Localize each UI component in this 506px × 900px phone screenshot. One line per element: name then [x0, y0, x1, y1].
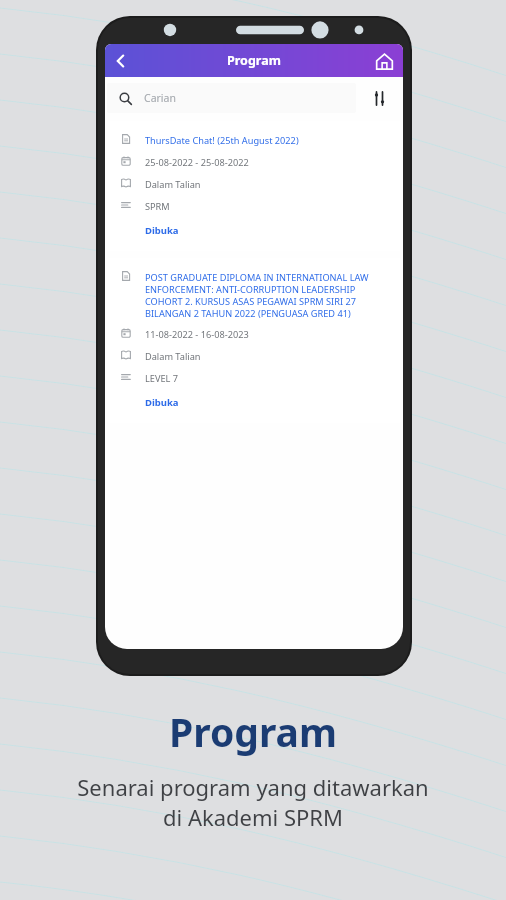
button[interactable]: POST GRADUATE DIPLOMA IN INTERNATIONAL L…: [107, 258, 401, 423]
staticText: Senarai program yang ditawarkan di Akade…: [77, 772, 429, 832]
staticText: ThursDate Chat! (25th August 2022): [145, 134, 299, 147]
staticText: 11-08-2022 - 16-08-2023: [145, 328, 249, 341]
staticText: Program: [227, 52, 281, 69]
staticText: SPRM: [145, 200, 170, 213]
button[interactable]: Back: [105, 45, 137, 77]
staticText: Dalam Talian: [145, 178, 201, 191]
staticText: LEVEL 7: [145, 372, 179, 385]
button[interactable]: Carian: [107, 83, 356, 113]
button[interactable]: ThursDate Chat! (25th August 2022): [107, 121, 401, 251]
staticText: 25-08-2022 - 25-08-2022: [145, 156, 249, 169]
staticText: POST GRADUATE DIPLOMA IN INTERNATIONAL L…: [145, 271, 389, 319]
staticText: Program: [169, 705, 337, 758]
staticText: Carian: [144, 91, 176, 105]
button[interactable]: Filter: [357, 81, 401, 115]
staticText: Dibuka: [145, 396, 179, 409]
button[interactable]: Home: [369, 46, 399, 76]
staticText: Dalam Talian: [145, 350, 201, 363]
staticText: Dibuka: [145, 224, 179, 237]
